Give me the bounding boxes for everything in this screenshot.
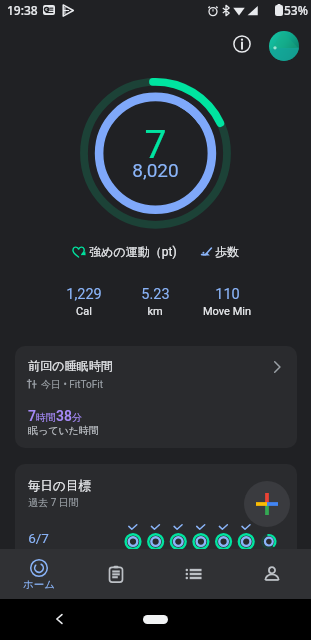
button[interactable]: Profile (268, 30, 300, 62)
staticText: 7 (140, 122, 171, 168)
button[interactable]: Browse (155, 549, 233, 599)
staticText: 7時間38分 (28, 408, 82, 424)
staticText: 1,229 (66, 286, 102, 303)
button[interactable]: 毎日の目標 (15, 464, 297, 574)
staticText: 強めの運動（pt) (89, 244, 177, 259)
staticText: 53% (284, 2, 308, 18)
staticText: Move Min (203, 305, 251, 318)
staticText: 6/7 (28, 530, 49, 546)
button[interactable]: Journal (77, 549, 155, 599)
staticText: 5.23 (141, 286, 170, 303)
button[interactable]: Information (227, 29, 257, 59)
button[interactable]: Add (244, 481, 290, 527)
staticText: 毎日の目標 (28, 478, 91, 494)
staticText: 歩数 (215, 244, 239, 259)
staticText: km (147, 305, 163, 318)
staticText: 眠っていた時間 (28, 424, 99, 437)
staticText: 過去 7 日間 (28, 496, 79, 509)
staticText: 前回の睡眠時間 (28, 358, 113, 373)
staticText: 19:38 (7, 2, 38, 18)
button[interactable]: ホーム (0, 549, 77, 599)
staticText: 今日 • FitToFit (41, 378, 103, 391)
staticText: 110 (215, 286, 240, 303)
staticText: ホーム (23, 578, 55, 591)
staticText: Cal (76, 305, 92, 318)
button[interactable]: Profile (233, 549, 311, 599)
button[interactable]: 前回の睡眠時間 (15, 346, 297, 448)
staticText: 8,020 (121, 159, 190, 181)
